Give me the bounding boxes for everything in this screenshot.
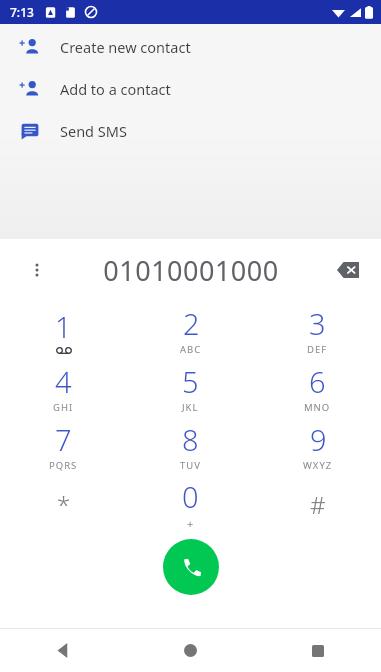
button[interactable]: 9 bbox=[254, 417, 381, 475]
staticText: GHI bbox=[53, 401, 74, 414]
button[interactable]: 5 bbox=[127, 359, 254, 417]
staticText: 7 bbox=[55, 420, 72, 459]
staticText: 01010001000 bbox=[103, 252, 279, 289]
button[interactable]: Send SMS bbox=[0, 114, 381, 148]
staticText: Add to a contact bbox=[60, 79, 171, 99]
button[interactable]: Create new contact bbox=[0, 30, 381, 64]
button[interactable]: Back bbox=[0, 629, 127, 672]
staticText: 3 bbox=[309, 304, 326, 343]
staticText: 0 bbox=[182, 477, 199, 516]
button[interactable]: 2 bbox=[127, 301, 254, 359]
staticText: 5 bbox=[182, 362, 199, 401]
staticText: DEF bbox=[307, 343, 328, 356]
staticText: 1 bbox=[55, 307, 72, 346]
button[interactable]: Backspace bbox=[329, 251, 367, 289]
staticText: 9 bbox=[310, 420, 327, 459]
staticText: WXYZ bbox=[303, 459, 333, 472]
button[interactable]: Home bbox=[127, 629, 254, 672]
staticText: TUV bbox=[180, 459, 201, 472]
staticText: 8 bbox=[182, 420, 199, 459]
button[interactable]: 1 bbox=[0, 301, 127, 359]
button[interactable]: * bbox=[0, 475, 127, 533]
staticText: 7:13 bbox=[10, 4, 34, 20]
staticText: # bbox=[310, 488, 326, 521]
staticText: 4 bbox=[55, 362, 72, 401]
button[interactable]: Recent apps bbox=[254, 629, 381, 672]
button[interactable]: 8 bbox=[127, 417, 254, 475]
button[interactable]: 6 bbox=[254, 359, 381, 417]
staticText: 2 bbox=[183, 304, 200, 343]
button[interactable]: 7 bbox=[0, 417, 127, 475]
button[interactable]: # bbox=[254, 475, 381, 533]
button[interactable]: Call bbox=[163, 539, 219, 595]
staticText: PQRS bbox=[49, 459, 78, 472]
staticText: JKL bbox=[182, 401, 199, 414]
button[interactable]: 0 bbox=[127, 475, 254, 533]
button[interactable]: 3 bbox=[254, 301, 381, 359]
staticText: Send SMS bbox=[60, 121, 127, 141]
button[interactable]: 4 bbox=[0, 359, 127, 417]
button[interactable]: Add to a contact bbox=[0, 72, 381, 106]
button[interactable]: More options bbox=[20, 253, 54, 287]
staticText: ABC bbox=[180, 343, 202, 356]
staticText: + bbox=[187, 516, 195, 531]
staticText: * bbox=[57, 488, 71, 521]
staticText: 6 bbox=[309, 362, 326, 401]
staticText: MNO bbox=[304, 401, 331, 414]
staticText: Create new contact bbox=[60, 37, 191, 57]
